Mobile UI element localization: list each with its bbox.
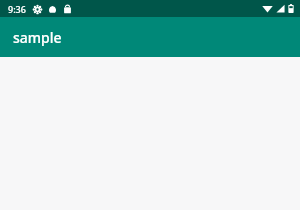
button[interactable]: sample bbox=[0, 17, 300, 57]
staticText: sample bbox=[13, 28, 62, 47]
staticText: 9:36 bbox=[8, 3, 26, 15]
